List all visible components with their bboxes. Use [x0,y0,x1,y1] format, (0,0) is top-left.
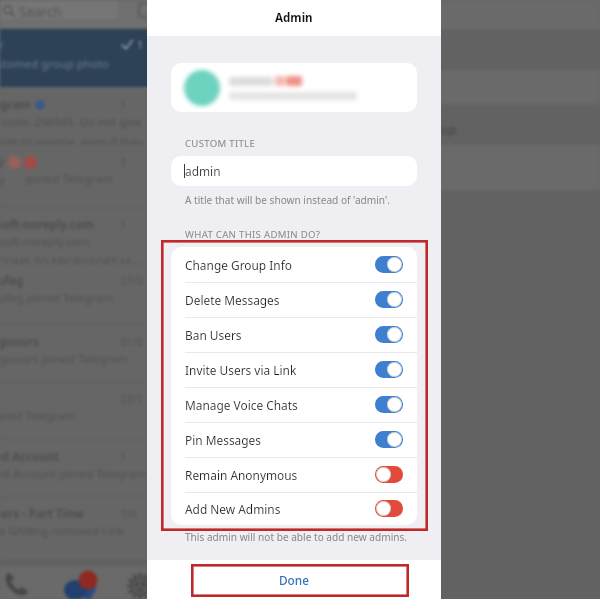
button[interactable]: Delete Messages [171,282,417,317]
button[interactable]: Invite Users via Link [171,352,417,387]
staticText: Admin [275,10,313,26]
staticText: Ban Users [185,327,242,343]
staticText: Search [19,3,62,21]
button[interactable]: Add New Admins [171,492,417,525]
staticText: Add New Admins [185,501,281,517]
staticText: CUSTOM TITLE [185,137,256,150]
staticText: Delete Messages [185,292,280,308]
button[interactable]: Ban Users [171,317,417,352]
button[interactable]: Calls [0,567,34,599]
button[interactable]: Pin Messages [171,422,417,457]
staticText: Remain Anonymous [185,467,298,483]
staticText: admin [185,163,221,179]
button[interactable]: oined Telegram [0,382,439,440]
staticText: 1 [137,37,144,52]
button[interactable]: Remain Anonymous [171,457,417,492]
button[interactable]: New message [138,2,154,18]
button[interactable]: Change Group Info [171,247,417,282]
button[interactable]: riguuurs [0,325,439,382]
staticText: Pin Messages [185,432,261,448]
staticText: osoft-noreply.com [0,217,95,233]
button[interactable]: legram [0,88,439,145]
staticText: WHAT CAN THIS ADMIN DO? [185,228,321,241]
button[interactable]: Done [147,560,441,599]
button[interactable]: mers - Part Time [0,497,439,561]
button[interactable]: pufeg [0,264,439,325]
staticText: mers - Part Time [0,506,84,522]
staticText: Manage Voice Chats [185,397,298,413]
staticText: ustomed group photo [0,56,109,72]
button[interactable] [171,63,417,112]
staticText: or [0,37,5,53]
staticText: pufeg [0,273,24,289]
button[interactable]: Chats [61,567,97,599]
staticText: ted Account [0,449,60,465]
button[interactable]: ny [0,145,439,208]
staticText: A title that will be shown instead of 'a… [185,193,390,207]
staticText: ny [0,154,5,170]
staticText: riguuurs [0,334,40,350]
button[interactable]: Manage Voice Chats [171,387,417,422]
staticText: This admin will not be able to add new a… [185,530,408,544]
button[interactable]: admin [171,156,417,186]
staticText: Invite Users via Link [185,362,297,378]
staticText: Done [279,572,309,588]
staticText: Change Group Info [185,257,292,273]
button[interactable]: osoft-noreply.com [0,208,439,264]
button[interactable]: ted Account [0,440,439,497]
button[interactable]: Search [0,1,118,19]
button[interactable]: Settings [122,567,158,599]
staticText: legram [0,97,31,113]
staticText: up. [441,121,460,137]
button[interactable]: or [0,29,439,87]
